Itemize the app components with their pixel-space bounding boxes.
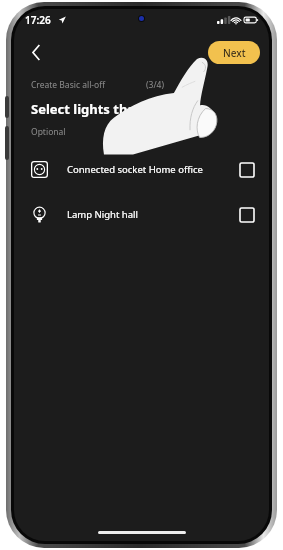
button[interactable]: Connected socket Home office bbox=[14, 152, 269, 186]
button[interactable]: Lamp Night hall bbox=[14, 197, 269, 231]
button[interactable]: Back bbox=[19, 35, 53, 69]
staticText: 17:26 bbox=[25, 13, 51, 27]
button[interactable]: Next bbox=[208, 41, 260, 64]
staticText: Lamp Night hall bbox=[67, 208, 238, 221]
staticText: Create Basic all-off bbox=[31, 79, 106, 91]
staticText: Optional bbox=[31, 126, 66, 138]
staticText: Connected socket Home office bbox=[67, 163, 238, 176]
staticText: (3/4) bbox=[146, 79, 164, 91]
staticText: Select lights that you want bbox=[31, 100, 205, 118]
button[interactable]: Select Connected socket Home office bbox=[238, 161, 255, 178]
button[interactable]: Select Lamp Night hall bbox=[238, 206, 255, 223]
staticText: Next bbox=[223, 46, 246, 60]
